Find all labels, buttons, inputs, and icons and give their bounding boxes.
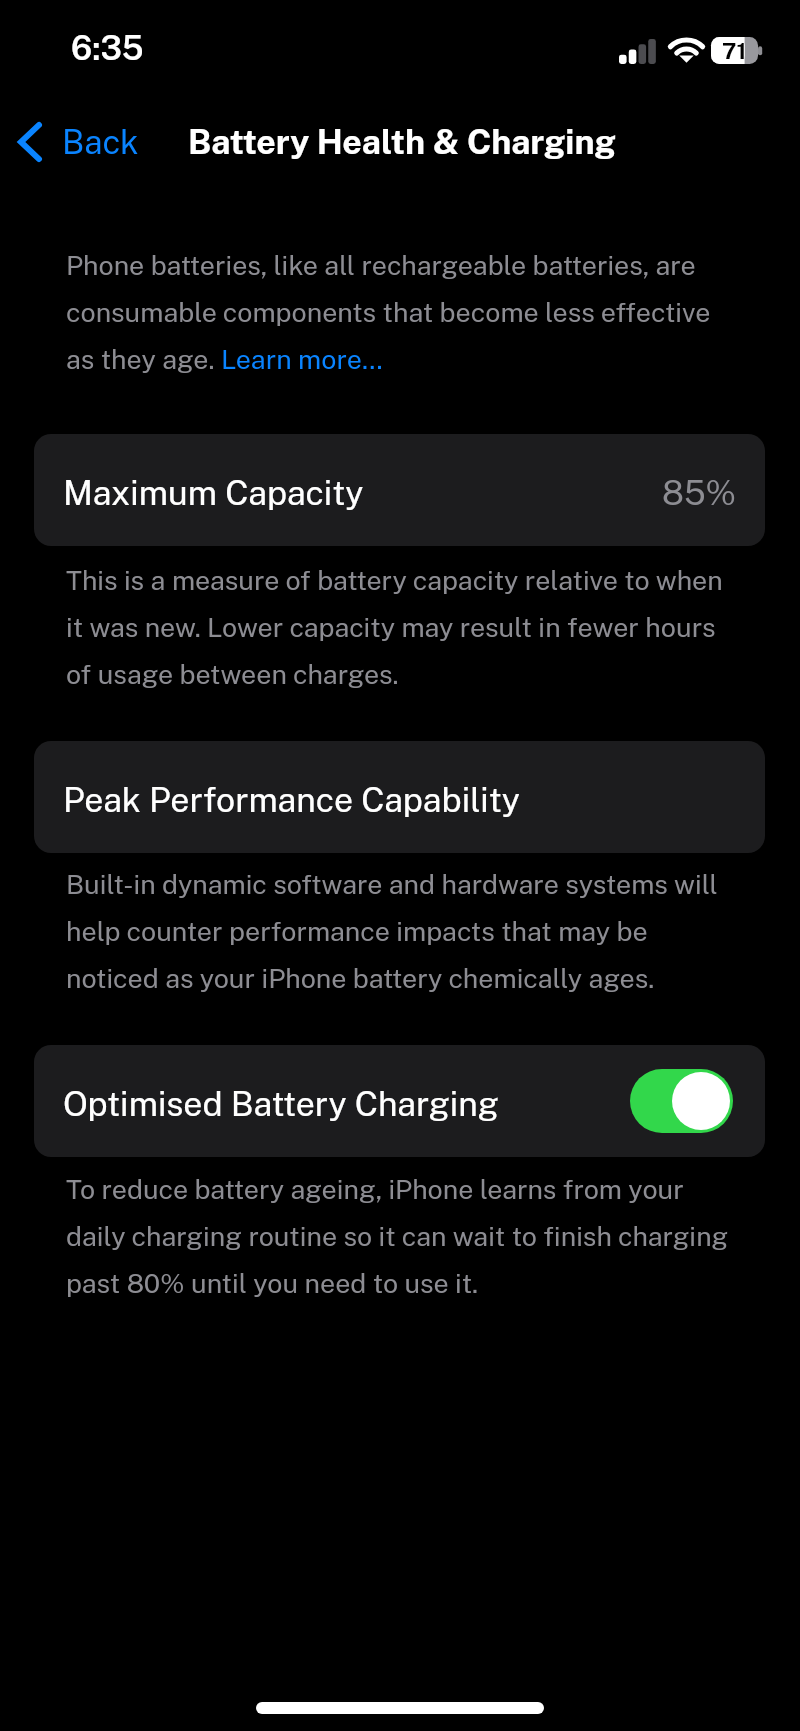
staticText: Maximum Capacity: [63, 473, 364, 513]
other: Wi-Fi connected: [668, 38, 705, 63]
button[interactable]: Back: [4, 113, 149, 171]
other: Cellular signal, 2 of 4 bars: [619, 39, 655, 64]
button[interactable]: Peak Performance Capability: [34, 741, 765, 853]
button[interactable]: Optimised Battery Charging: [34, 1045, 765, 1157]
button[interactable]: Learn more: [202, 346, 384, 380]
staticText: This is a measure of battery capacity re…: [66, 565, 736, 690]
staticText: 6:35: [71, 29, 144, 68]
staticText: Optimised Battery Charging: [63, 1084, 499, 1124]
button[interactable]: Optimised Battery Charging, on: [630, 1069, 733, 1133]
staticText: Back: [62, 123, 139, 162]
button[interactable]: Maximum Capacity: [34, 434, 765, 546]
staticText: 71: [722, 37, 747, 64]
staticText: Phone batteries, like all rechargeable b…: [66, 250, 736, 375]
other: Battery 71 percent: [711, 37, 764, 64]
staticText: Peak Performance Capability: [63, 780, 520, 820]
staticText: 85%: [662, 473, 737, 513]
staticText: Built-in dynamic software and hardware s…: [66, 869, 736, 994]
staticText: To reduce battery ageing, iPhone learns …: [66, 1174, 736, 1299]
staticText: Battery Health & Charging: [188, 122, 616, 162]
